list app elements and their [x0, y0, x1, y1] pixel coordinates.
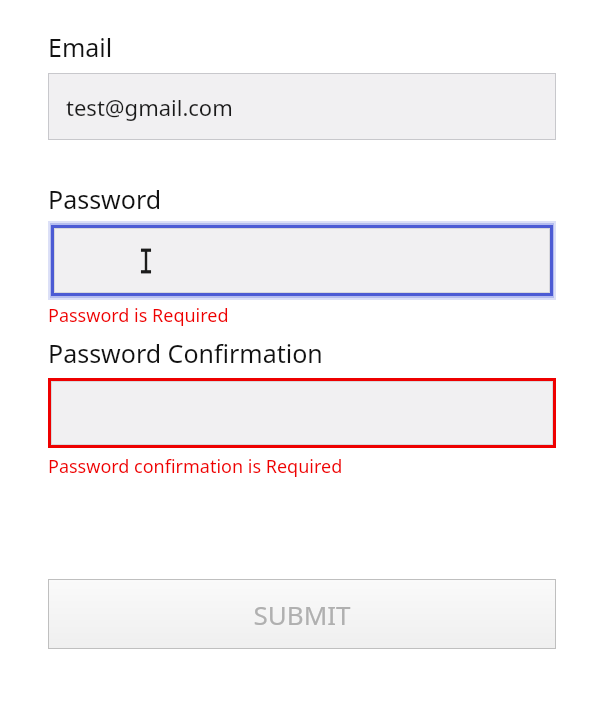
staticText: Password confirmation is Required [48, 454, 343, 479]
staticText: test@gmail.com [66, 92, 233, 122]
button[interactable]: Password confirmation input [48, 378, 556, 448]
staticText: Password Confirmation [48, 336, 323, 370]
staticText: Email [48, 30, 113, 64]
staticText: Password is Required [48, 303, 229, 328]
button[interactable]: Password input [48, 220, 556, 301]
staticText: Password [48, 182, 162, 216]
staticText: SUBMIT [253, 597, 351, 632]
button[interactable]: test@gmail.com [48, 73, 556, 140]
button[interactable]: SUBMIT [48, 579, 556, 649]
